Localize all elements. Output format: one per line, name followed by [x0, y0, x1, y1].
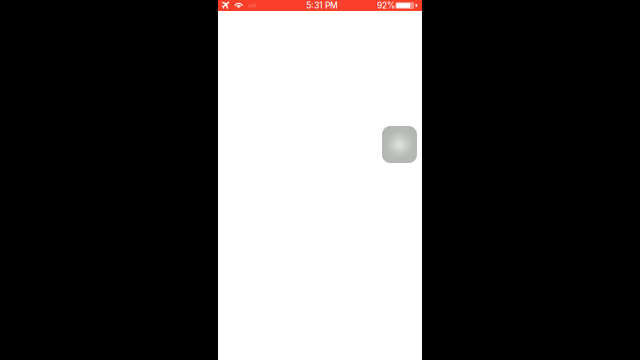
staticText: 92%	[377, 0, 395, 11]
staticText: 5:31 PM	[306, 0, 338, 11]
